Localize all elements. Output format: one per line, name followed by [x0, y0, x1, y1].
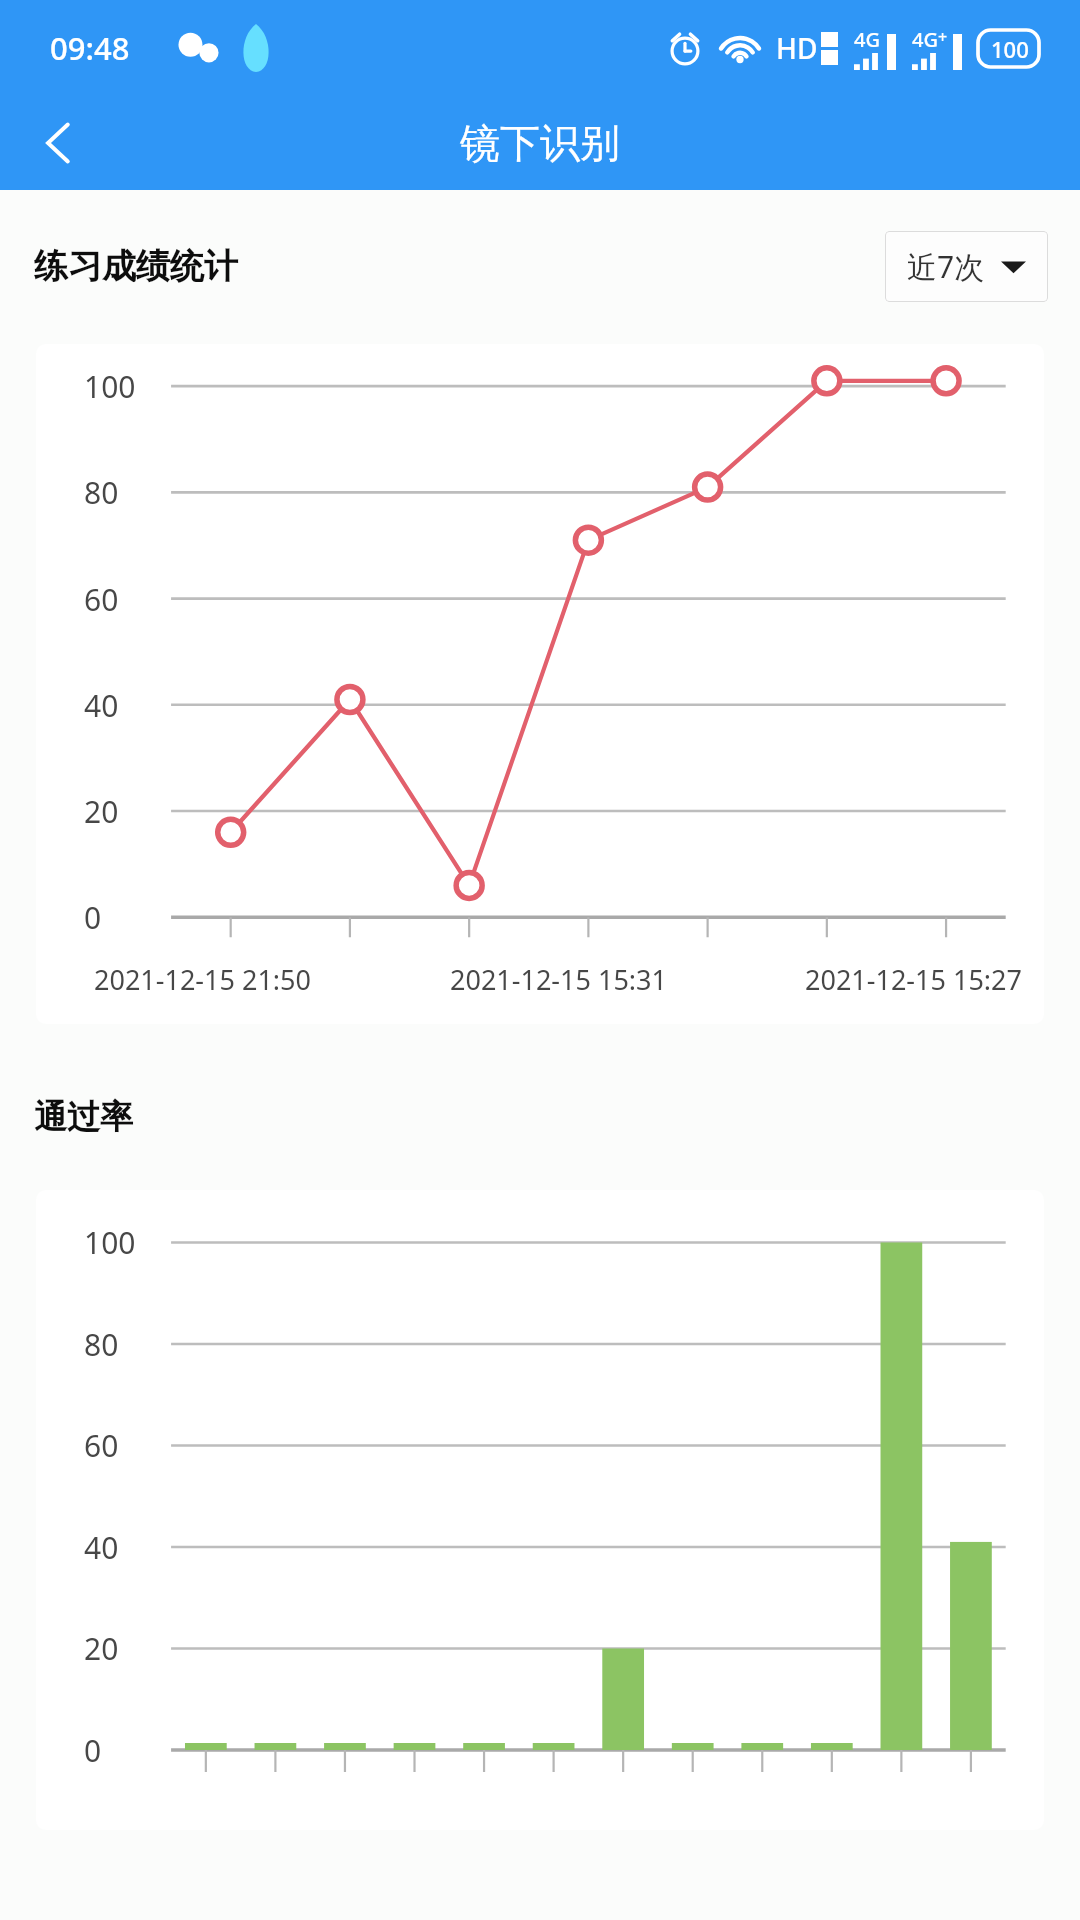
- button[interactable]: 近7次: [885, 231, 1048, 302]
- staticText: 4G: [912, 26, 938, 53]
- staticText: 80: [84, 1324, 119, 1365]
- staticText: 0: [84, 1730, 102, 1771]
- staticText: 4G: [854, 26, 880, 53]
- staticText: HD: [776, 29, 818, 67]
- staticText: 2021-12-15 15:27: [805, 961, 1022, 998]
- staticText: 100: [84, 1222, 136, 1263]
- staticText: 60: [84, 579, 119, 620]
- staticText: 80: [84, 472, 119, 513]
- staticText: 100: [991, 34, 1029, 64]
- staticText: 通过率: [34, 1096, 133, 1138]
- staticText: 20: [84, 1628, 119, 1669]
- staticText: 09:48: [50, 27, 130, 69]
- button[interactable]: Back: [14, 98, 104, 188]
- staticText: +: [938, 26, 948, 48]
- staticText: 2021-12-15 21:50: [94, 961, 311, 998]
- staticText: 100: [84, 366, 136, 407]
- staticText: 2021-12-15 15:31: [450, 961, 667, 998]
- staticText: 60: [84, 1425, 119, 1466]
- staticText: 20: [84, 791, 119, 832]
- staticText: 练习成绩统计: [34, 245, 238, 288]
- staticText: 近7次: [907, 246, 985, 287]
- staticText: 镜下识别: [460, 118, 620, 168]
- staticText: 40: [84, 685, 119, 726]
- staticText: 0: [84, 897, 102, 938]
- staticText: 40: [84, 1527, 119, 1568]
